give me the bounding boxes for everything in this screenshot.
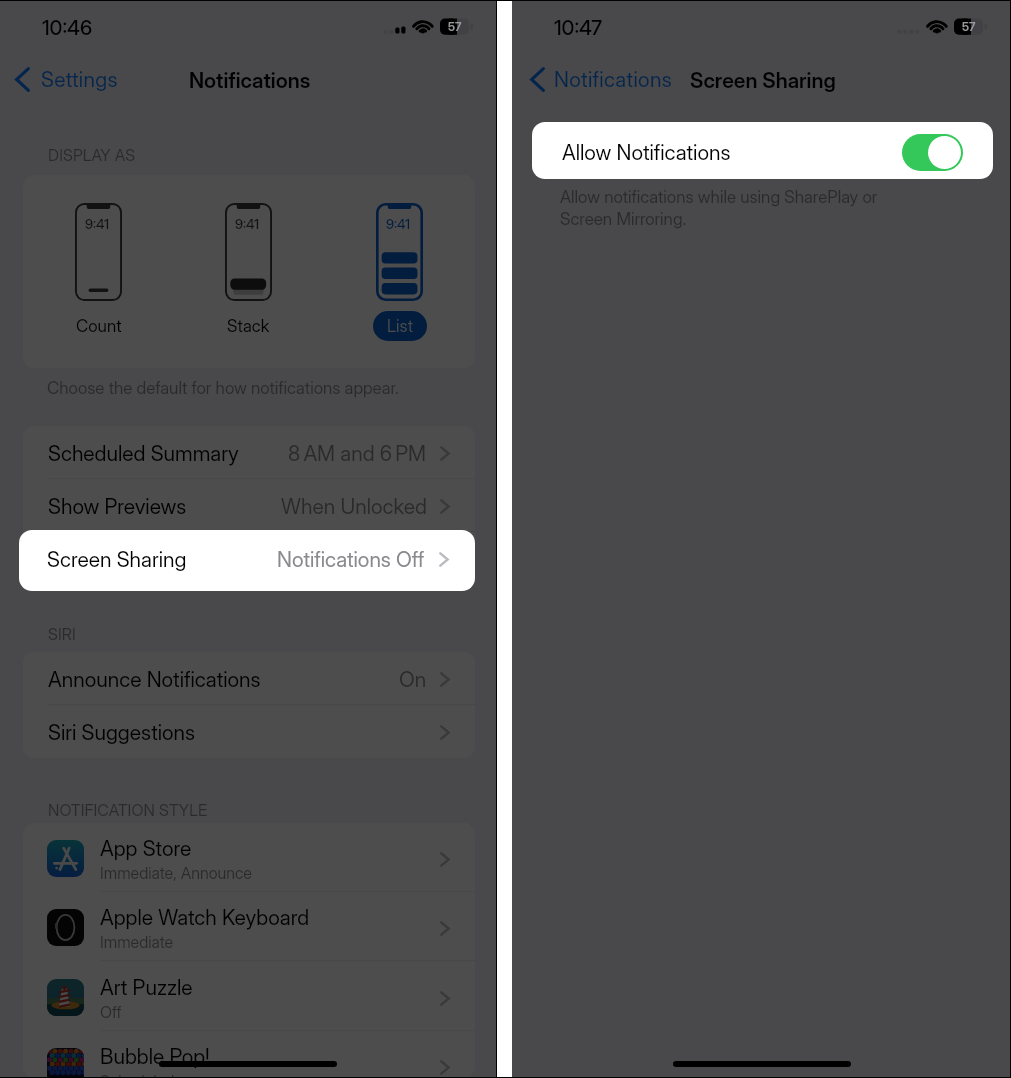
button[interactable]: App Store xyxy=(23,823,475,892)
staticText: 10:47 xyxy=(554,15,602,40)
button[interactable]: Display as List xyxy=(352,175,447,368)
staticText: Allow notifications while using SharePla… xyxy=(560,187,878,229)
staticText: Off xyxy=(100,1002,122,1021)
button[interactable]: Scheduled Summary xyxy=(23,426,475,479)
staticText: Notifications xyxy=(189,68,311,93)
button[interactable]: Art Puzzle xyxy=(23,962,475,1031)
button[interactable]: Allow Notifications toggle xyxy=(902,134,963,171)
staticText: 57 xyxy=(962,19,976,34)
staticText: Scheduled xyxy=(100,1071,175,1078)
staticText: Scheduled Summary xyxy=(48,441,239,466)
staticText: List xyxy=(387,316,414,337)
staticText: Settings xyxy=(41,67,118,92)
button[interactable]: Siri Suggestions xyxy=(23,705,475,758)
button[interactable]: Screen Sharing xyxy=(23,532,475,585)
staticText: Immediate xyxy=(100,932,174,951)
button[interactable]: Show Previews xyxy=(23,479,475,532)
staticText: Choose the default for how notifications… xyxy=(47,378,399,399)
staticText: On xyxy=(399,667,427,692)
staticText: Art Puzzle xyxy=(100,975,193,1000)
staticText: 10:46 xyxy=(42,15,93,40)
button[interactable]: Apple Watch Keyboard xyxy=(23,892,475,961)
staticText: Stack xyxy=(227,316,270,337)
button[interactable]: Stack xyxy=(227,311,270,341)
staticText: Screen Sharing xyxy=(690,68,836,93)
staticText: Show Previews xyxy=(48,494,187,519)
staticText: Notifications Off xyxy=(277,547,425,572)
staticText: App Store xyxy=(100,836,192,861)
staticText: 9:41 xyxy=(85,216,110,232)
staticText: SIRI xyxy=(48,624,76,643)
staticText: Screen Sharing xyxy=(47,547,187,572)
staticText: Notifications Off xyxy=(279,547,427,572)
staticText: Allow Notifications xyxy=(562,140,731,165)
staticText: DISPLAY AS xyxy=(48,145,136,164)
button[interactable]: Bubble Pop! xyxy=(23,1031,475,1078)
staticText: Bubble Pop! xyxy=(100,1044,210,1069)
button[interactable]: Display as Stack xyxy=(201,175,296,368)
staticText: 9:41 xyxy=(235,216,260,232)
staticText: 8 AM and 6 PM xyxy=(288,441,427,466)
button[interactable]: List xyxy=(373,311,427,341)
staticText: Screen Sharing xyxy=(48,547,188,572)
staticText: Immediate, Announce xyxy=(100,863,252,882)
staticText: Apple Watch Keyboard xyxy=(100,905,310,930)
staticText: 57 xyxy=(448,19,462,34)
staticText: Count xyxy=(76,316,122,337)
button[interactable]: Notifications xyxy=(524,61,672,97)
button[interactable]: Display as Count xyxy=(51,175,146,368)
button[interactable]: Screen Sharing xyxy=(19,530,475,591)
button[interactable]: Allow Notifications xyxy=(532,122,993,179)
staticText: NOTIFICATION STYLE xyxy=(48,800,208,819)
staticText: 9:41 xyxy=(386,216,411,232)
button[interactable]: Settings xyxy=(9,61,118,97)
staticText: Siri Suggestions xyxy=(48,720,195,745)
staticText: When Unlocked xyxy=(281,494,427,519)
button[interactable]: Count xyxy=(76,311,122,341)
button[interactable]: Announce Notifications xyxy=(23,652,475,705)
staticText: Announce Notifications xyxy=(48,667,261,692)
staticText: Notifications xyxy=(554,67,672,92)
